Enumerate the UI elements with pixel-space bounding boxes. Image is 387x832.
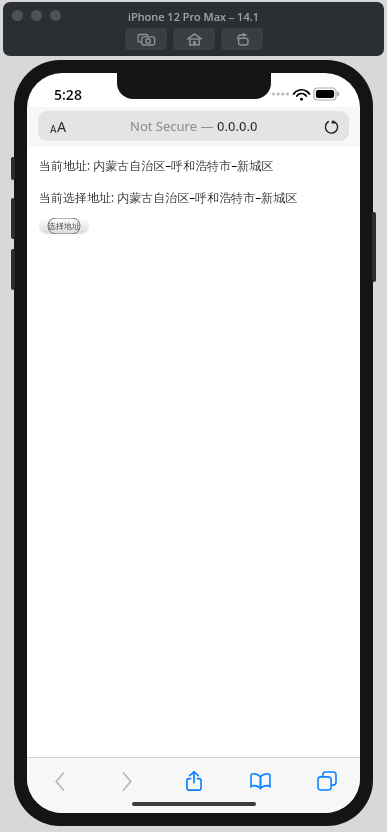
button[interactable]: Home [173, 28, 215, 50]
button[interactable]: 选择地址 [39, 218, 89, 234]
staticText: iPhone 12 Pro Max – 14.1 [128, 9, 259, 24]
button[interactable]: Screenshot [125, 28, 167, 50]
staticText: A [57, 117, 67, 136]
staticText: 5:28 [54, 85, 82, 104]
button[interactable] [31, 10, 42, 21]
button[interactable] [12, 10, 23, 21]
button[interactable]: Tabs [303, 765, 351, 797]
button[interactable]: Share [170, 765, 218, 797]
button[interactable]: Reload [316, 111, 346, 141]
button[interactable]: Back [36, 765, 84, 797]
staticText: 当前地址: 内蒙古自治区–呼和浩特市–新城区 [39, 157, 274, 173]
button[interactable]: Rotate [221, 28, 263, 50]
staticText: A [50, 122, 57, 136]
staticText: 当前选择地址: 内蒙古自治区–呼和浩特市–新城区 [39, 189, 298, 205]
staticText: 选择地址 [48, 221, 80, 231]
staticText: Not Secure — [130, 117, 217, 135]
button[interactable] [50, 10, 61, 21]
button[interactable]: Text size [41, 111, 75, 141]
button[interactable]: Text size [38, 111, 349, 141]
button[interactable]: Forward [103, 765, 151, 797]
button[interactable]: Bookmarks [236, 765, 284, 797]
staticText: 0.0.0.0 [217, 117, 258, 135]
